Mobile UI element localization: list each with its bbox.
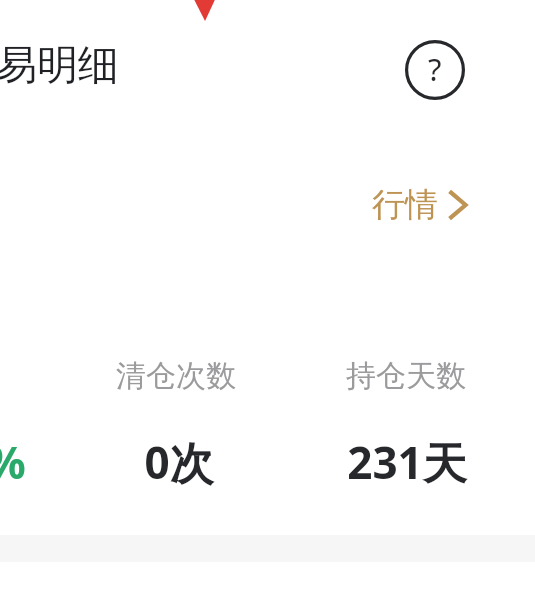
button[interactable]: 帮助	[405, 40, 465, 100]
staticText: 0次	[99, 432, 259, 492]
staticText: %	[0, 432, 26, 492]
staticText: ?	[428, 48, 442, 90]
staticText: 231天	[327, 432, 487, 492]
button[interactable]: 行情	[368, 182, 471, 228]
staticText: 易明细	[0, 40, 119, 92]
staticText: 行情	[372, 184, 438, 226]
staticText: 持仓天数	[326, 357, 486, 395]
staticText: 清仓次数	[96, 357, 256, 395]
